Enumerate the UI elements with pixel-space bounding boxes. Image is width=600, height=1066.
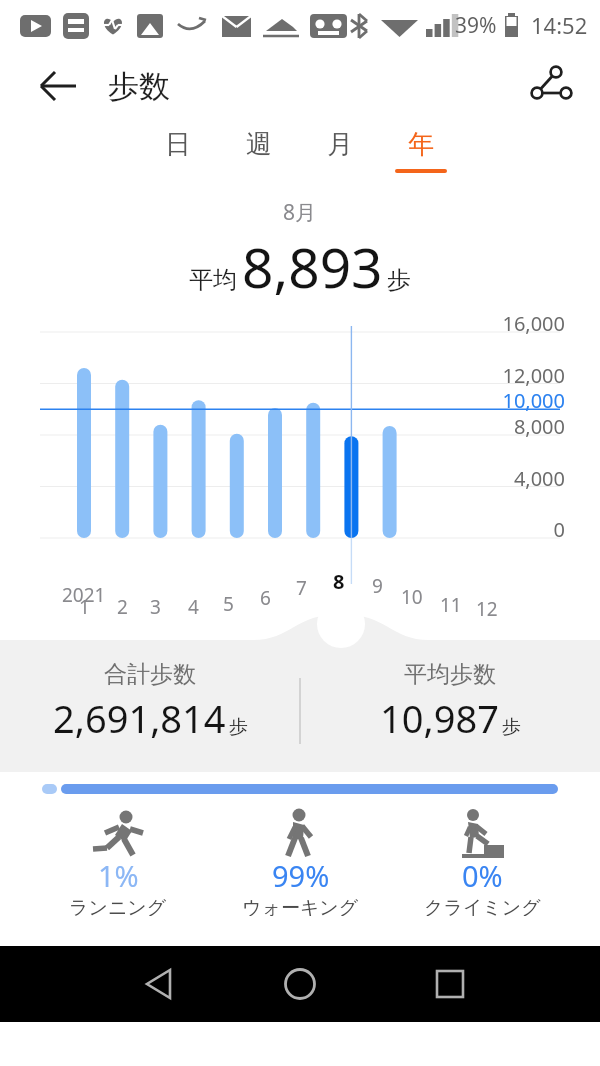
staticText: 4 bbox=[188, 594, 199, 620]
staticText: 5 bbox=[223, 591, 234, 617]
staticText: クライミング bbox=[424, 896, 541, 916]
staticText: 10,987 bbox=[380, 692, 499, 744]
staticText: 16,000 bbox=[502, 310, 565, 337]
button[interactable]: 1% bbox=[28, 808, 208, 916]
staticText: 7 bbox=[296, 575, 307, 601]
staticText: 平均歩数 bbox=[404, 660, 496, 689]
staticText: 8,000 bbox=[513, 413, 565, 440]
staticText: 3 bbox=[150, 594, 161, 620]
staticText: 合計歩数 bbox=[104, 660, 196, 689]
staticText: 歩数 bbox=[108, 67, 170, 106]
staticText: 0% bbox=[462, 856, 503, 895]
staticText: 14:52 bbox=[531, 10, 588, 40]
staticText: 2021 bbox=[62, 582, 106, 608]
staticText: ウォーキング bbox=[242, 896, 359, 916]
button[interactable]: 9 bbox=[357, 573, 397, 599]
staticText: 6 bbox=[260, 585, 271, 611]
button[interactable]: Back bbox=[34, 63, 80, 109]
staticText: 8 bbox=[333, 568, 345, 595]
staticText: 10,000 bbox=[502, 387, 565, 414]
button[interactable]: 月 bbox=[300, 122, 380, 186]
staticText: 歩 bbox=[502, 715, 521, 739]
staticText: 平均 bbox=[189, 265, 237, 295]
staticText: 1% bbox=[98, 856, 139, 895]
button[interactable]: 平均歩数 bbox=[300, 660, 600, 744]
staticText: 月 bbox=[327, 128, 353, 161]
staticText: ランニング bbox=[69, 896, 167, 916]
button[interactable]: 11 bbox=[431, 592, 471, 618]
staticText: 歩 bbox=[387, 265, 411, 295]
staticText: 歩 bbox=[229, 715, 248, 739]
button[interactable]: 1 bbox=[64, 594, 104, 620]
button[interactable]: Share bbox=[524, 60, 576, 112]
staticText: 10 bbox=[401, 584, 423, 610]
staticText: 12,000 bbox=[502, 362, 565, 389]
button[interactable]: 5 bbox=[208, 591, 248, 617]
button[interactable]: 0% bbox=[392, 808, 572, 916]
button[interactable]: 8 bbox=[319, 568, 359, 595]
button[interactable]: 99% bbox=[210, 808, 390, 916]
staticText: 0 bbox=[553, 516, 565, 543]
button[interactable]: 2 bbox=[102, 594, 142, 620]
button[interactable]: 6 bbox=[245, 585, 285, 611]
staticText: 1 bbox=[79, 594, 90, 620]
button[interactable]: 週 bbox=[219, 122, 299, 186]
staticText: 年 bbox=[408, 128, 434, 161]
staticText: 4,000 bbox=[513, 465, 565, 492]
button[interactable]: 合計歩数 bbox=[0, 660, 300, 744]
button[interactable]: 7 bbox=[281, 575, 321, 601]
staticText: 2,691,814 bbox=[53, 692, 226, 744]
button[interactable]: 10 bbox=[392, 584, 432, 610]
staticText: 39% bbox=[455, 11, 497, 40]
staticText: 2 bbox=[117, 594, 128, 620]
staticText: 8,893 bbox=[242, 229, 383, 304]
button[interactable]: 12 bbox=[467, 596, 507, 622]
staticText: 8月 bbox=[283, 198, 317, 227]
staticText: 12 bbox=[476, 596, 498, 622]
staticText: 週 bbox=[246, 128, 272, 161]
button[interactable]: 日 bbox=[138, 122, 218, 186]
staticText: 99% bbox=[272, 856, 330, 895]
staticText: 9 bbox=[372, 573, 383, 599]
button[interactable]: 4 bbox=[173, 594, 213, 620]
button[interactable]: 3 bbox=[135, 594, 175, 620]
button[interactable]: 年 bbox=[381, 122, 461, 186]
staticText: 日 bbox=[165, 128, 191, 161]
staticText: 11 bbox=[440, 592, 462, 618]
